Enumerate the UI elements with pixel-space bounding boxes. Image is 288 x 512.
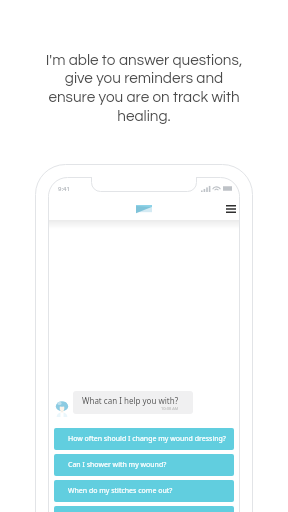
- button[interactable]: How often should I change my wound dress…: [54, 428, 234, 450]
- staticText: 10:08 AM: [161, 406, 179, 411]
- button[interactable]: Can I shower with my wound?: [54, 454, 234, 476]
- button[interactable]: Menu: [223, 201, 239, 217]
- button[interactable]: [54, 506, 234, 512]
- button[interactable]: When do my stitches come out?: [54, 480, 234, 502]
- staticText: When do my stitches come out?: [68, 486, 173, 496]
- staticText: I'm able to answer questions, give you r…: [0, 52, 288, 124]
- staticText: Can I shower with my wound?: [68, 460, 167, 470]
- staticText: 9:41: [58, 185, 70, 193]
- staticText: What can I help you with?: [82, 395, 179, 406]
- staticText: How often should I change my wound dress…: [68, 434, 226, 444]
